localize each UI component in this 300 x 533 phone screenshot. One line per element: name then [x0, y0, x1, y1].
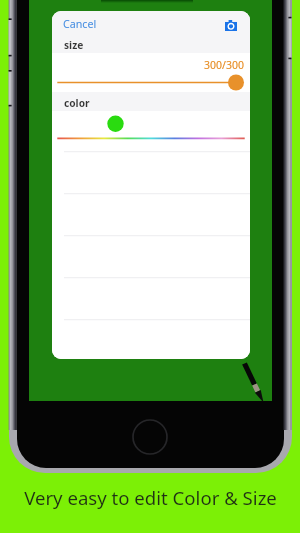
button[interactable]: Cancel — [52, 14, 103, 33]
staticText: Very easy to edit Color & Size — [24, 485, 277, 510]
staticText: 300/300 — [204, 58, 244, 72]
staticText: size — [64, 38, 84, 52]
button[interactable] — [52, 319, 250, 359]
staticText: color — [64, 96, 90, 110]
staticText: Cancel — [63, 17, 97, 32]
button[interactable]: Camera — [225, 17, 250, 31]
